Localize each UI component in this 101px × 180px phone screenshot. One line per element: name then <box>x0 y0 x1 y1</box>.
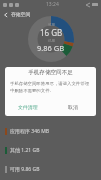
staticText: 取消 <box>68 104 78 110</box>
staticText: 9.86 GB <box>37 43 65 53</box>
staticText: 其他 1.21 GB <box>10 147 40 154</box>
button[interactable]: 文件清理 <box>5 100 50 113</box>
staticText: 已用 <box>48 39 55 43</box>
staticText: 可用 <box>48 23 55 27</box>
staticText: 存储空间 <box>11 11 31 17</box>
button[interactable]: 可用 9.86 GB <box>0 160 101 179</box>
staticText: 应用程序 346 MB <box>10 128 49 135</box>
staticText: 16 GB <box>40 27 63 38</box>
staticText: 13:24 <box>46 1 59 8</box>
button[interactable]: 应用程序 346 MB <box>0 122 101 141</box>
staticText: 可用 9.86 GB <box>10 166 40 173</box>
button[interactable]: 其他 1.21 GB <box>0 141 101 160</box>
staticText: 手机存储空间即将用尽，请进入文件管理中删除不需要的文件。 <box>10 81 91 93</box>
button[interactable]: 取消 <box>50 100 96 113</box>
staticText: 手机存储空间不足 <box>5 69 96 76</box>
staticText: 文件清理 <box>18 104 38 110</box>
button[interactable]: Back <box>0 9 11 20</box>
